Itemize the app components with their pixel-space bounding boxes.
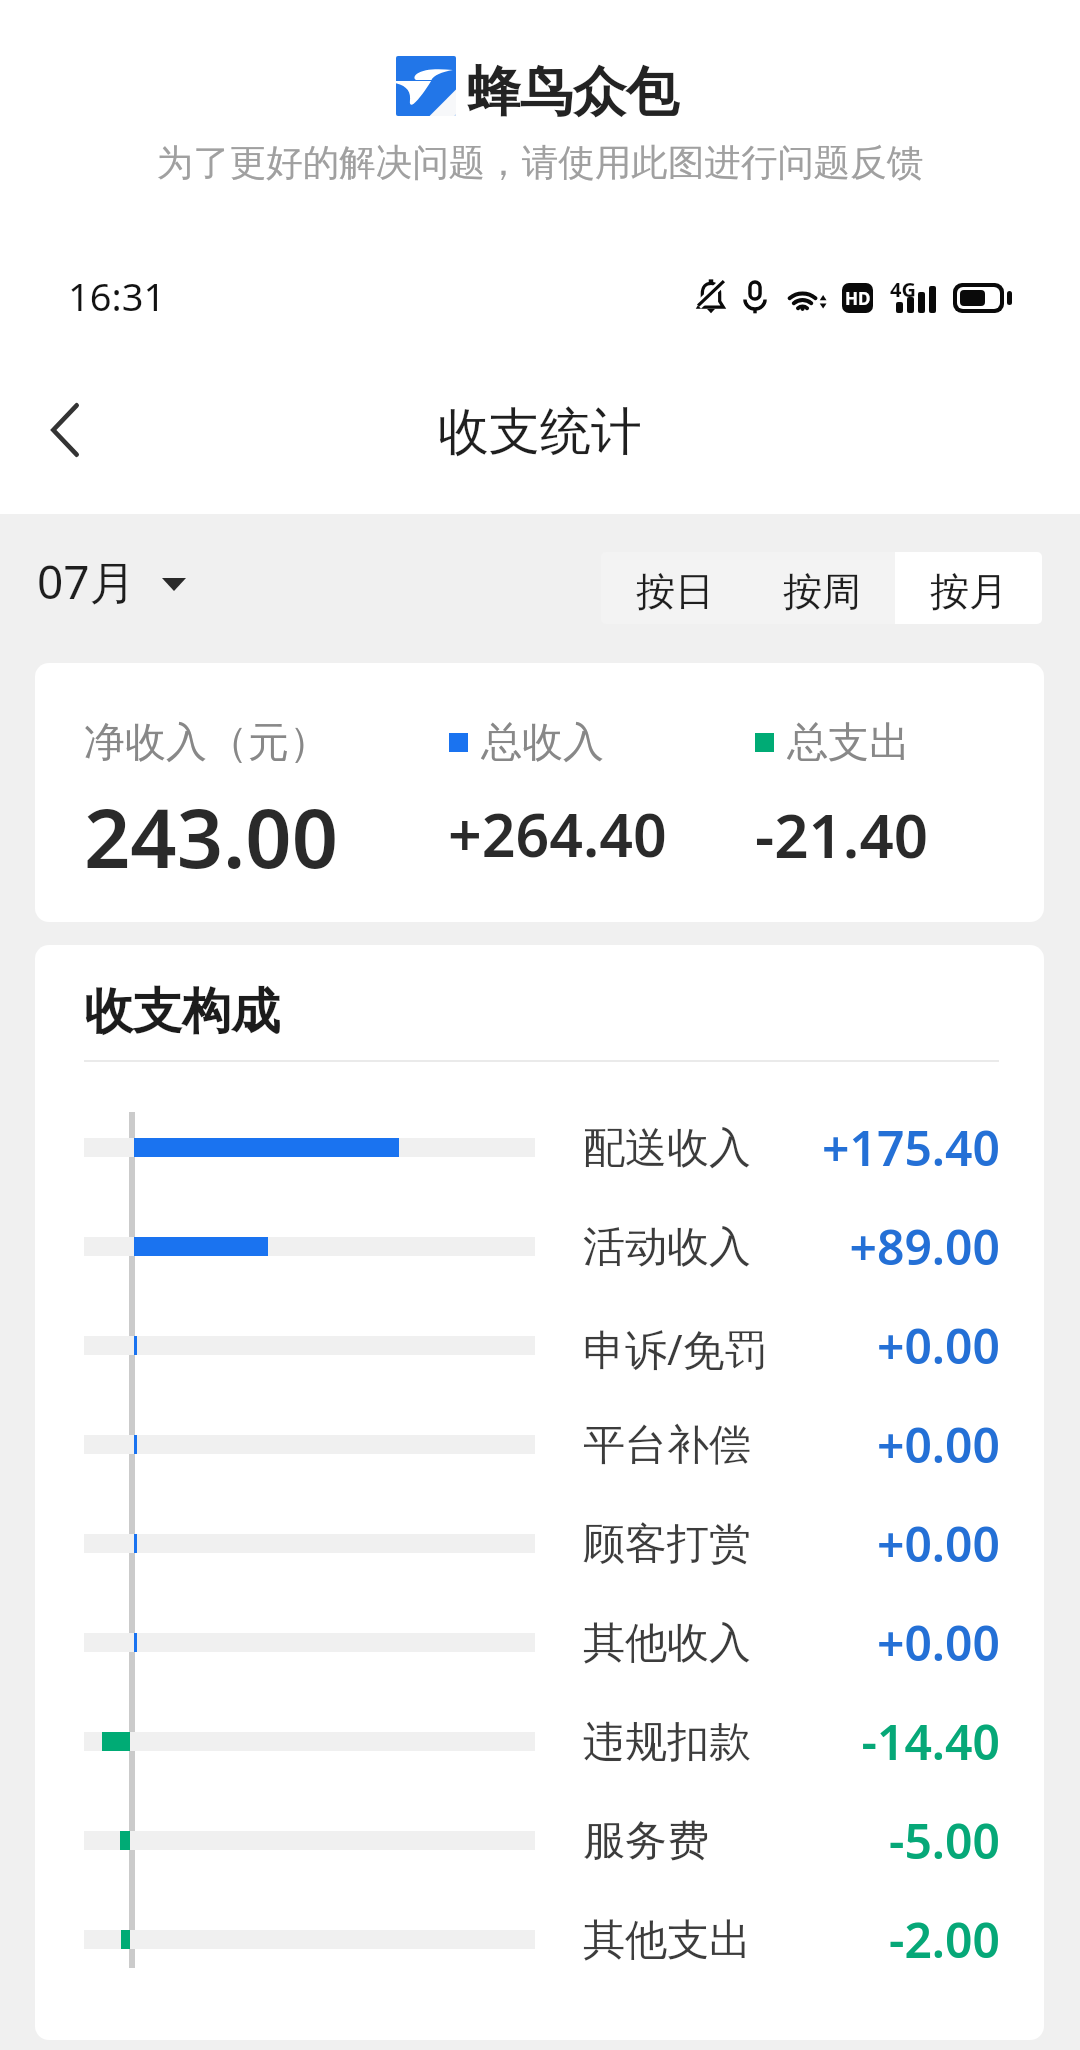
button[interactable] (75, 1597, 1000, 1687)
button[interactable]: 按周 (748, 552, 895, 624)
button[interactable] (75, 1300, 1000, 1390)
staticText: 违规扣款 (583, 1716, 751, 1769)
staticText: 顾客打赏 (583, 1518, 751, 1571)
button[interactable] (75, 1894, 1000, 1984)
staticText: 总收入 (481, 717, 604, 769)
staticText: 按周 (783, 567, 861, 616)
staticText: +0.00 (655, 1412, 1000, 1477)
button[interactable]: Back (25, 390, 105, 470)
button[interactable] (75, 1102, 1000, 1192)
staticText: 蜂鸟众包 (467, 59, 679, 126)
staticText: -5.00 (655, 1808, 1000, 1873)
button[interactable] (75, 1201, 1000, 1291)
button[interactable]: 按日 (601, 552, 748, 624)
staticText: 16:31 (68, 270, 166, 322)
staticText: 活动收入 (583, 1221, 751, 1274)
button[interactable]: 按月 (895, 552, 1042, 624)
staticText: 净收入（元） (84, 717, 330, 769)
staticText: -21.40 (755, 794, 929, 876)
staticText: 243.00 (84, 781, 339, 891)
button[interactable]: 07月 (37, 545, 186, 617)
staticText: +264.40 (448, 794, 667, 874)
staticText: 总支出 (787, 717, 910, 769)
staticText: HD (845, 287, 871, 310)
staticText: 平台补偿 (583, 1419, 751, 1472)
staticText: 按日 (636, 567, 714, 616)
staticText: -2.00 (655, 1907, 1000, 1972)
staticText: 其他支出 (583, 1914, 751, 1967)
button[interactable] (75, 1399, 1000, 1489)
staticText: 4G (890, 276, 916, 303)
staticText: 其他收入 (583, 1617, 751, 1670)
staticText: 07月 (37, 550, 136, 613)
button[interactable] (75, 1795, 1000, 1885)
button[interactable] (75, 1696, 1000, 1786)
staticText: +0.00 (655, 1610, 1000, 1675)
staticText: 收支构成 (84, 981, 280, 1043)
staticText: 配送收入 (583, 1122, 751, 1175)
staticText: 服务费 (583, 1815, 709, 1868)
staticText: 申诉/免罚 (583, 1320, 767, 1377)
staticText: 为了更好的解决问题，请使用此图进行问题反馈 (0, 140, 1080, 186)
staticText: +0.00 (655, 1313, 1000, 1378)
staticText: +89.00 (655, 1214, 1000, 1279)
staticText: 按月 (930, 567, 1008, 616)
button[interactable] (75, 1498, 1000, 1588)
staticText: +0.00 (655, 1511, 1000, 1576)
staticText: +175.40 (655, 1115, 1000, 1180)
staticText: -14.40 (655, 1709, 1000, 1774)
staticText: 收支统计 (0, 400, 1080, 464)
